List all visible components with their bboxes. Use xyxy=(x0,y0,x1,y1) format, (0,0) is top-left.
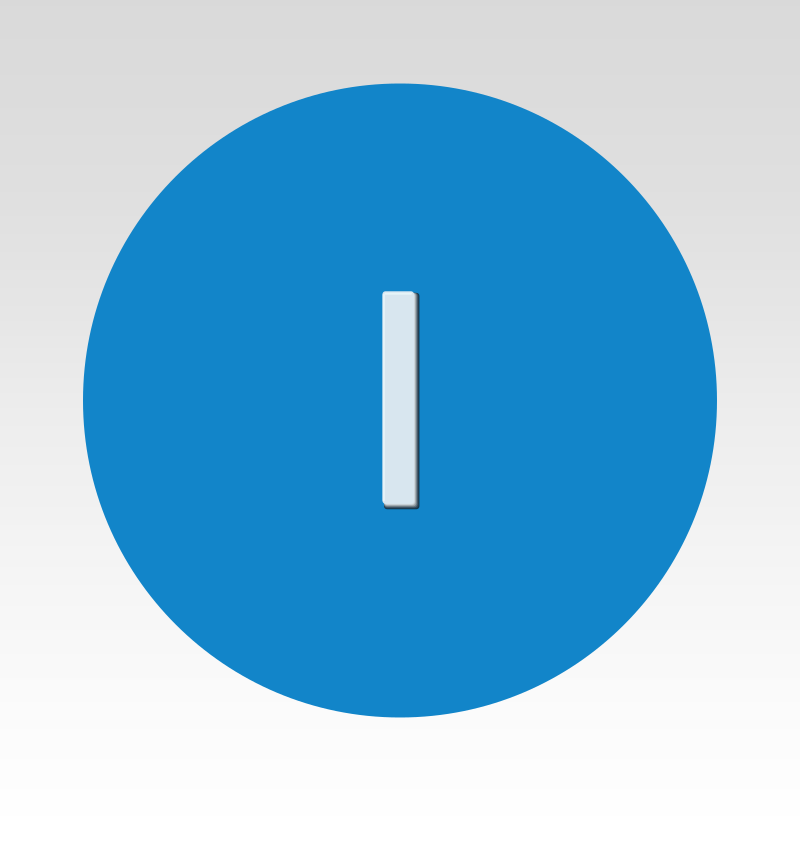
button[interactable]: Power xyxy=(83,83,717,717)
